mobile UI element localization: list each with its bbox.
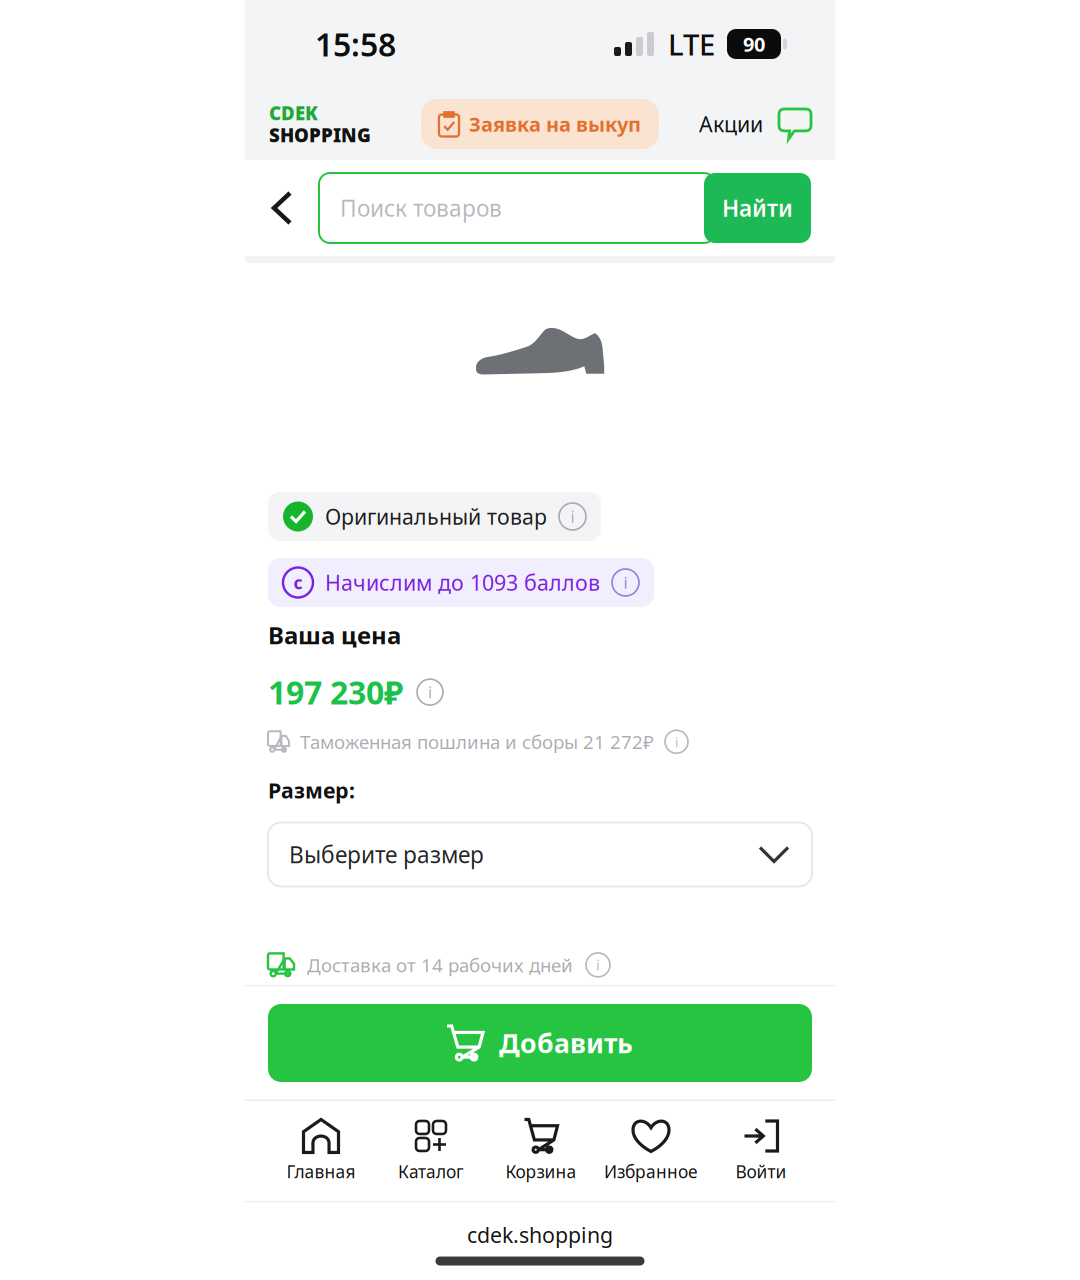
staticText: Добавить xyxy=(499,1025,633,1061)
button[interactable]: Каталог xyxy=(376,1115,486,1187)
staticText: Войти xyxy=(735,1160,786,1183)
staticText: CDEK xyxy=(269,101,318,125)
staticText: Избранное xyxy=(604,1160,698,1183)
button[interactable]: Акции xyxy=(699,110,763,138)
button[interactable]: Чат xyxy=(763,109,811,139)
button[interactable]: Оригинальный товар xyxy=(268,492,601,541)
button[interactable]: Назад xyxy=(245,173,319,243)
staticText: i xyxy=(596,955,600,975)
staticText: i xyxy=(623,572,627,593)
staticText: Ваша цена xyxy=(268,619,401,651)
button[interactable]: Заявка на выкуп xyxy=(421,99,659,149)
staticText: Главная xyxy=(286,1160,355,1183)
staticText: Выберите размер xyxy=(289,839,484,869)
staticText: c xyxy=(293,571,302,594)
staticText: Заявка на выкуп xyxy=(469,111,641,137)
button[interactable]: Корзина xyxy=(486,1115,596,1187)
staticText: Каталог xyxy=(398,1160,464,1183)
button[interactable]: c xyxy=(268,558,654,607)
staticText: 15:58 xyxy=(315,23,396,65)
button[interactable]: Войти xyxy=(706,1115,816,1187)
staticText: 90 xyxy=(743,31,765,57)
staticText: Поиск товаров xyxy=(340,193,502,223)
button[interactable]: Выберите размер xyxy=(268,822,812,886)
staticText: Корзина xyxy=(505,1160,576,1183)
staticText: i xyxy=(675,733,678,751)
staticText: Доставка от 14 рабочих дней xyxy=(307,952,573,977)
staticText: LTE xyxy=(668,24,715,63)
button[interactable]: CDEK Shopping xyxy=(269,101,381,147)
staticText: SHOPPING xyxy=(269,122,371,147)
staticText: Оригинальный товар xyxy=(325,502,547,531)
staticText: 197 230₽ xyxy=(268,671,403,713)
button[interactable]: Избранное xyxy=(596,1115,706,1187)
staticText: Размер: xyxy=(268,776,355,804)
staticText: i xyxy=(570,506,574,527)
staticText: i xyxy=(428,681,432,703)
staticText: Акции xyxy=(699,110,763,138)
staticText: Таможенная пошлина и сборы 21 272₽ xyxy=(300,729,654,754)
button[interactable]: Найти xyxy=(704,173,811,243)
staticText: cdek.shopping xyxy=(467,1220,613,1249)
staticText: Начислим до 1093 баллов xyxy=(325,568,600,597)
button[interactable]: Добавить xyxy=(268,1004,812,1082)
button[interactable]: Главная xyxy=(266,1115,376,1187)
staticText: Найти xyxy=(722,193,793,223)
